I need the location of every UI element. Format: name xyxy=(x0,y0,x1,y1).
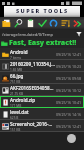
button[interactable]: Search xyxy=(13,18,24,29)
button[interactable]: Scroll thumb xyxy=(67,134,76,143)
button[interactable]: Sort xyxy=(60,18,71,29)
staticText: 171 MB xyxy=(10,104,22,108)
staticText: 20160209_110354.jpg xyxy=(10,61,55,67)
staticText: AKF2016SE0340586_01_1_99_20... xyxy=(10,85,55,91)
staticText: Android.zip xyxy=(10,97,36,103)
button[interactable]: Android xyxy=(0,48,84,60)
staticText: level.dat xyxy=(10,109,29,115)
staticText: 751 KB xyxy=(10,80,21,84)
button[interactable]: Android.zip xyxy=(0,96,84,108)
button[interactable]: 66.jpg xyxy=(0,72,84,84)
button[interactable]: AKF2016SE0340586_01_1_99_20... xyxy=(0,84,84,96)
staticText: 66.jpg xyxy=(10,73,24,79)
staticText: /storage/emulated/0/Temp xyxy=(2,32,76,37)
button[interactable]: Extract xyxy=(72,18,83,29)
button[interactable]: Open folder xyxy=(1,18,12,29)
staticText: Fast, Easy extract!! xyxy=(9,38,77,48)
staticText: 09/25/16 14:16 xyxy=(56,112,82,117)
staticText: 7 items xyxy=(10,56,21,60)
button[interactable]: SUPER TOOLS xyxy=(4,6,80,17)
staticText: 09/25/16 12:41 xyxy=(56,124,82,129)
staticText: Screenshot_2016-... xyxy=(10,121,53,127)
staticText: 09/25/16 10:23 xyxy=(56,64,82,69)
staticText: 09/25/16 12:41 xyxy=(56,52,82,57)
button[interactable]: Filter xyxy=(76,31,82,37)
button[interactable]: Refresh xyxy=(48,18,59,29)
staticText: Android xyxy=(10,49,28,55)
staticText: 625 B xyxy=(10,116,19,120)
staticText: 21.75 KB xyxy=(10,92,24,96)
staticText: 1.65 MB xyxy=(10,68,23,72)
button[interactable]: Select all xyxy=(37,18,48,29)
staticText: 09/25/16 10:41 xyxy=(56,100,82,105)
staticText: 09/25/16 10:12 xyxy=(56,88,82,93)
button[interactable]: Notes xyxy=(25,18,36,29)
button[interactable]: level.dat xyxy=(0,108,84,120)
button[interactable]: Fast, Easy extract!! xyxy=(1,38,84,48)
button[interactable]: 20160209_110354.jpg xyxy=(0,60,84,72)
staticText: 151 KB xyxy=(10,128,21,132)
staticText: SUPER TOOLS xyxy=(16,7,69,14)
button[interactable]: Screenshot_2016-... xyxy=(0,120,84,132)
staticText: 09/25/16 09:58 xyxy=(56,76,82,81)
staticText: F I L E M A N A G E R xyxy=(28,15,58,17)
